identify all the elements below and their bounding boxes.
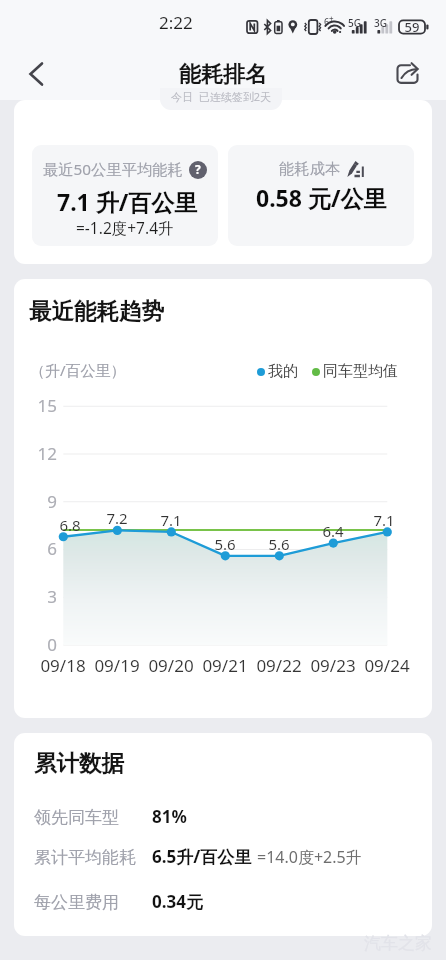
button[interactable]: 今日 已连续签到2天 (160, 88, 282, 110)
staticText: 7.1 (364, 510, 404, 530)
staticText: 同车型均值 (323, 362, 398, 381)
button[interactable]: 能耗成本 (228, 145, 414, 246)
staticText: 6 (324, 15, 330, 27)
staticText: 09/18 (35, 654, 91, 677)
button[interactable]: 累计平均能耗 (34, 845, 362, 868)
staticText: 09/23 (305, 654, 361, 677)
staticText: 09/24 (359, 654, 415, 677)
staticText: =14.0度+2.5升 (257, 846, 362, 868)
staticText: ? (195, 161, 201, 177)
staticText: 6 (16, 537, 57, 560)
staticText: 6.8 (50, 515, 90, 535)
staticText: 能耗排名 (179, 61, 267, 89)
staticText: 6.5升/百公里 (152, 845, 252, 868)
staticText: + (329, 13, 334, 24)
staticText: 最近能耗趋势 (29, 297, 164, 325)
staticText: 0.58 元/公里 (256, 182, 387, 213)
staticText: 5.6 (205, 534, 245, 554)
staticText: 领先同车型 (34, 807, 119, 828)
staticText: 59 (402, 18, 422, 36)
staticText: 5G (348, 16, 361, 30)
staticText: =-1.2度+7.4升 (76, 217, 174, 238)
staticText: （升/百公里） (30, 360, 126, 380)
button[interactable]: 领先同车型 (34, 805, 187, 828)
staticText: 每公里费用 (34, 892, 119, 913)
button[interactable]: 每公里费用 (34, 890, 203, 913)
staticText: 15 (16, 394, 57, 417)
staticText: 09/21 (197, 654, 253, 677)
staticText: 7.1 (151, 510, 191, 530)
staticText: 能耗成本 (279, 159, 341, 178)
staticText: 7.2 (97, 508, 137, 528)
staticText: 今日 已连续签到2天 (171, 89, 272, 104)
staticText: 6.4 (313, 521, 353, 541)
staticText: 3G (374, 16, 387, 30)
staticText: 3 (16, 585, 57, 608)
staticText: 5.6 (259, 534, 299, 554)
staticText: 汽车之家 (364, 933, 432, 954)
staticText: 我的 (268, 362, 298, 381)
staticText: 09/19 (89, 654, 145, 677)
button[interactable]: 最近50公里平均能耗 (32, 145, 218, 246)
staticText: 09/22 (251, 654, 307, 677)
staticText: 最近50公里平均能耗 (43, 159, 183, 180)
staticText: 累计数据 (34, 749, 124, 777)
button[interactable]: Share (390, 56, 424, 90)
staticText: 09/20 (143, 654, 199, 677)
staticText: 累计平均能耗 (34, 847, 136, 868)
staticText: 12 (16, 442, 57, 465)
staticText: 0.34元 (152, 890, 203, 913)
staticText: 7.1 升/百公里 (57, 186, 198, 217)
staticText: 81% (152, 805, 187, 828)
staticText: 9 (16, 490, 57, 513)
staticText: 0 (16, 633, 57, 656)
button[interactable]: Back (20, 56, 54, 90)
staticText: 2:22 (159, 11, 193, 34)
